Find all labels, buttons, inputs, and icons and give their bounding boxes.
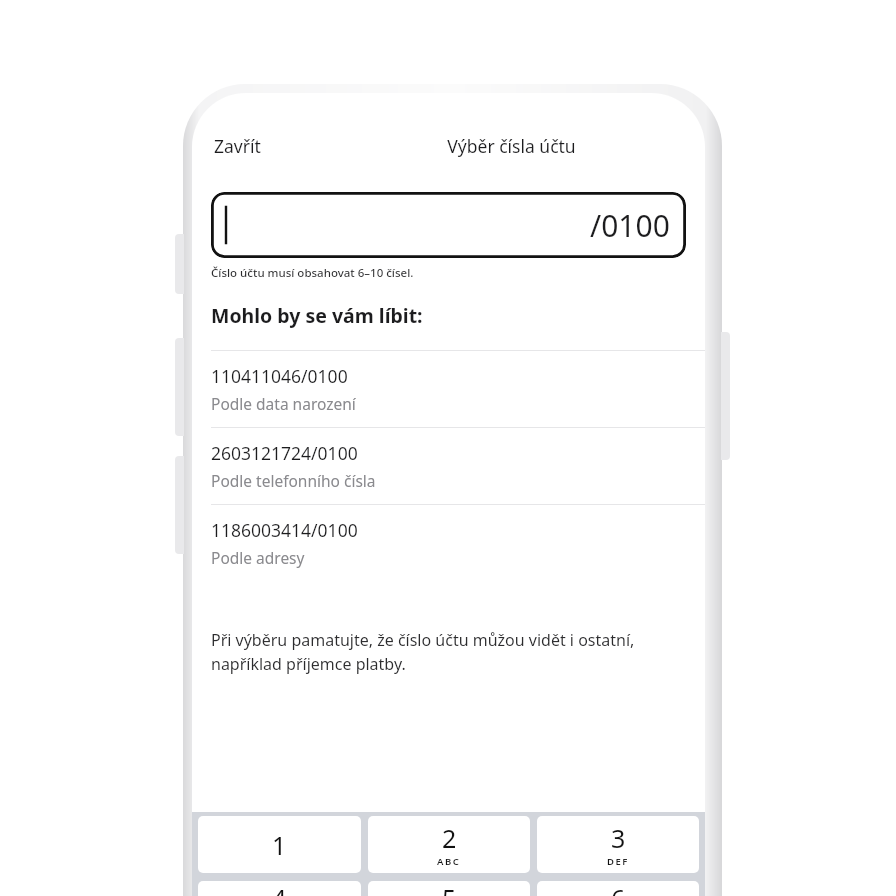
button[interactable]: 6: [537, 881, 699, 896]
button[interactable]: 2603121724/0100: [192, 428, 705, 504]
staticText: 6: [611, 881, 626, 896]
staticText: Výběr čísla účtu: [447, 134, 576, 158]
staticText: Mohlo by se vám líbit:: [211, 302, 423, 329]
staticText: 110411046/0100: [211, 364, 348, 388]
button[interactable]: Account number input: [211, 192, 686, 258]
staticText: 5: [442, 881, 457, 896]
staticText: 1186003414/0100: [211, 518, 358, 542]
staticText: Podle telefonního čísla: [211, 470, 376, 491]
button[interactable]: 5: [368, 881, 530, 896]
button[interactable]: 110411046/0100: [192, 351, 705, 427]
staticText: ABC: [437, 855, 461, 868]
staticText: Podle data narození: [211, 393, 356, 414]
staticText: 2: [442, 821, 457, 855]
staticText: 4: [272, 881, 287, 896]
staticText: Při výběru pamatujte, že číslo účtu můžo…: [211, 629, 635, 675]
staticText: 1: [272, 828, 287, 862]
button[interactable]: 1: [198, 816, 361, 873]
button[interactable]: 3: [537, 816, 699, 873]
staticText: Zavřít: [214, 134, 261, 158]
button[interactable]: 4: [198, 881, 361, 896]
staticText: Podle adresy: [211, 547, 305, 568]
staticText: 3: [611, 821, 626, 855]
staticText: /0100: [590, 205, 670, 246]
staticText: DEF: [607, 855, 629, 868]
staticText: Číslo účtu musí obsahovat 6–10 čísel.: [211, 265, 414, 281]
button[interactable]: Zavřít: [192, 127, 283, 165]
button[interactable]: 1186003414/0100: [192, 505, 705, 581]
button[interactable]: 2: [368, 816, 530, 873]
staticText: 2603121724/0100: [211, 441, 358, 465]
